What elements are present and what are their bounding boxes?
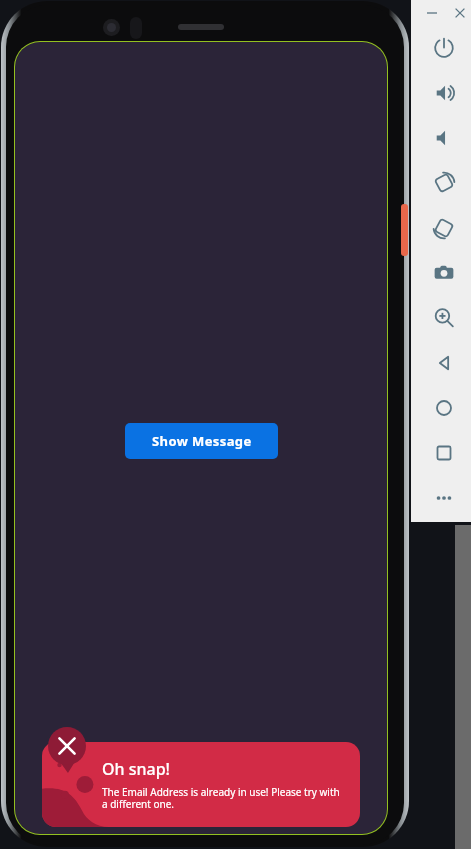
button[interactable]: Home bbox=[431, 395, 457, 421]
button[interactable]: Show Message bbox=[125, 423, 278, 459]
button[interactable]: Oh snap! bbox=[42, 742, 360, 827]
button[interactable]: More bbox=[431, 485, 457, 511]
staticText: The Email Address is already in use! Ple… bbox=[102, 785, 344, 811]
button[interactable]: Volume down bbox=[431, 125, 457, 151]
staticText: Show Message bbox=[152, 432, 252, 450]
staticText: Oh snap! bbox=[102, 758, 170, 780]
button[interactable]: Close bbox=[450, 3, 470, 23]
button[interactable]: Rotate right bbox=[431, 215, 457, 241]
button[interactable]: Take screenshot bbox=[431, 260, 457, 286]
button[interactable]: Minimize bbox=[422, 3, 442, 23]
button[interactable]: Recents bbox=[431, 440, 457, 466]
button[interactable]: Power bbox=[431, 35, 457, 61]
button[interactable]: Volume up bbox=[431, 80, 457, 106]
button[interactable]: Rotate left bbox=[431, 170, 457, 196]
button[interactable]: Back bbox=[431, 350, 457, 376]
button[interactable]: Error bbox=[48, 727, 86, 765]
button[interactable]: Zoom bbox=[431, 305, 457, 331]
